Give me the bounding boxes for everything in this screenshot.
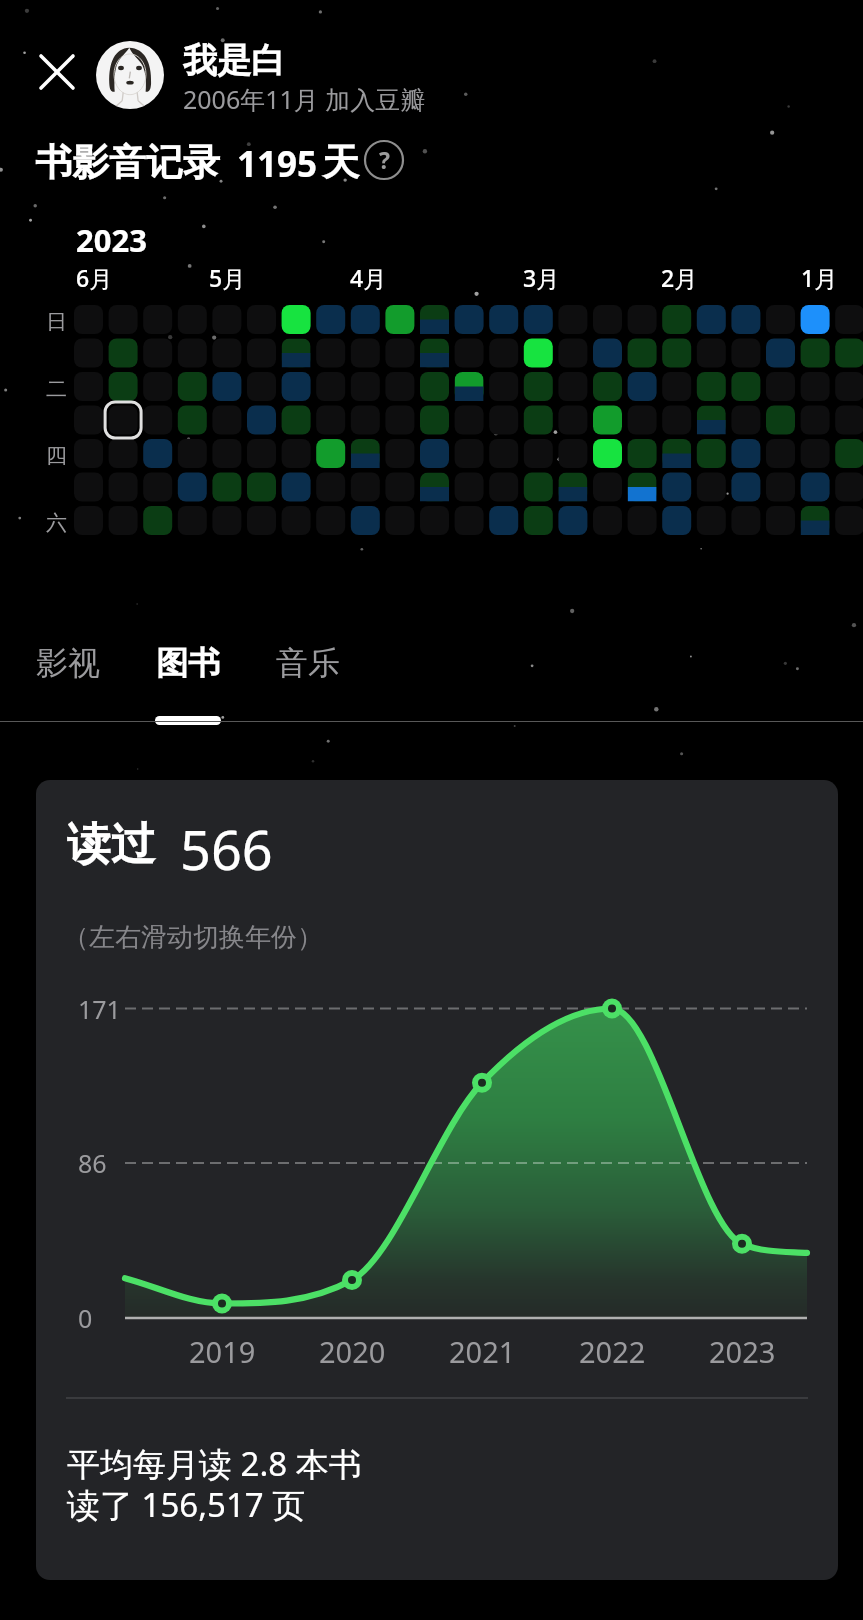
staticText: 1月	[801, 262, 838, 293]
staticText: 2006年11月 加入豆瓣	[183, 82, 426, 116]
staticText: 4月	[350, 262, 387, 293]
staticText: 图书	[156, 643, 220, 683]
staticText: 天	[322, 139, 359, 186]
button[interactable]: Profile avatar	[96, 41, 164, 109]
staticText: 2019	[189, 1332, 256, 1371]
staticText: 读过	[67, 817, 155, 872]
staticText: 2月	[661, 262, 698, 293]
staticText: 1195	[237, 140, 318, 188]
staticText: 171	[78, 992, 121, 1026]
button[interactable]: 影视	[18, 630, 118, 726]
staticText: 2023	[76, 219, 147, 261]
staticText: 566	[180, 812, 273, 886]
staticText: 日	[46, 309, 67, 335]
staticText: 音乐	[276, 643, 340, 683]
button[interactable]: Close	[33, 48, 81, 96]
staticText: 3月	[523, 262, 560, 293]
staticText: 影视	[36, 643, 100, 683]
staticText: 2020	[319, 1332, 386, 1371]
staticText: 二	[46, 376, 67, 402]
staticText: 我是白	[183, 39, 285, 82]
button[interactable]: 图书	[138, 630, 238, 726]
staticText: 86	[78, 1146, 107, 1180]
staticText: 2023	[709, 1332, 776, 1371]
staticText: 四	[46, 443, 67, 469]
staticText: 2021	[449, 1332, 516, 1371]
staticText: 6月	[76, 262, 113, 293]
staticText: 2022	[579, 1332, 646, 1371]
staticText: 5月	[209, 262, 246, 293]
staticText: （左右滑动切换年份）	[63, 921, 323, 954]
staticText: 平均每月读 2.8 本书	[67, 1441, 362, 1486]
button[interactable]: 读过	[36, 780, 838, 1580]
staticText: 读了 156,517 页	[67, 1482, 306, 1527]
staticText: 书影音记录	[35, 139, 220, 186]
staticText: 六	[46, 510, 67, 536]
staticText: ?	[379, 144, 390, 175]
button[interactable]: Help	[358, 134, 410, 186]
button[interactable]: 音乐	[258, 630, 358, 726]
staticText: 0	[78, 1301, 93, 1335]
